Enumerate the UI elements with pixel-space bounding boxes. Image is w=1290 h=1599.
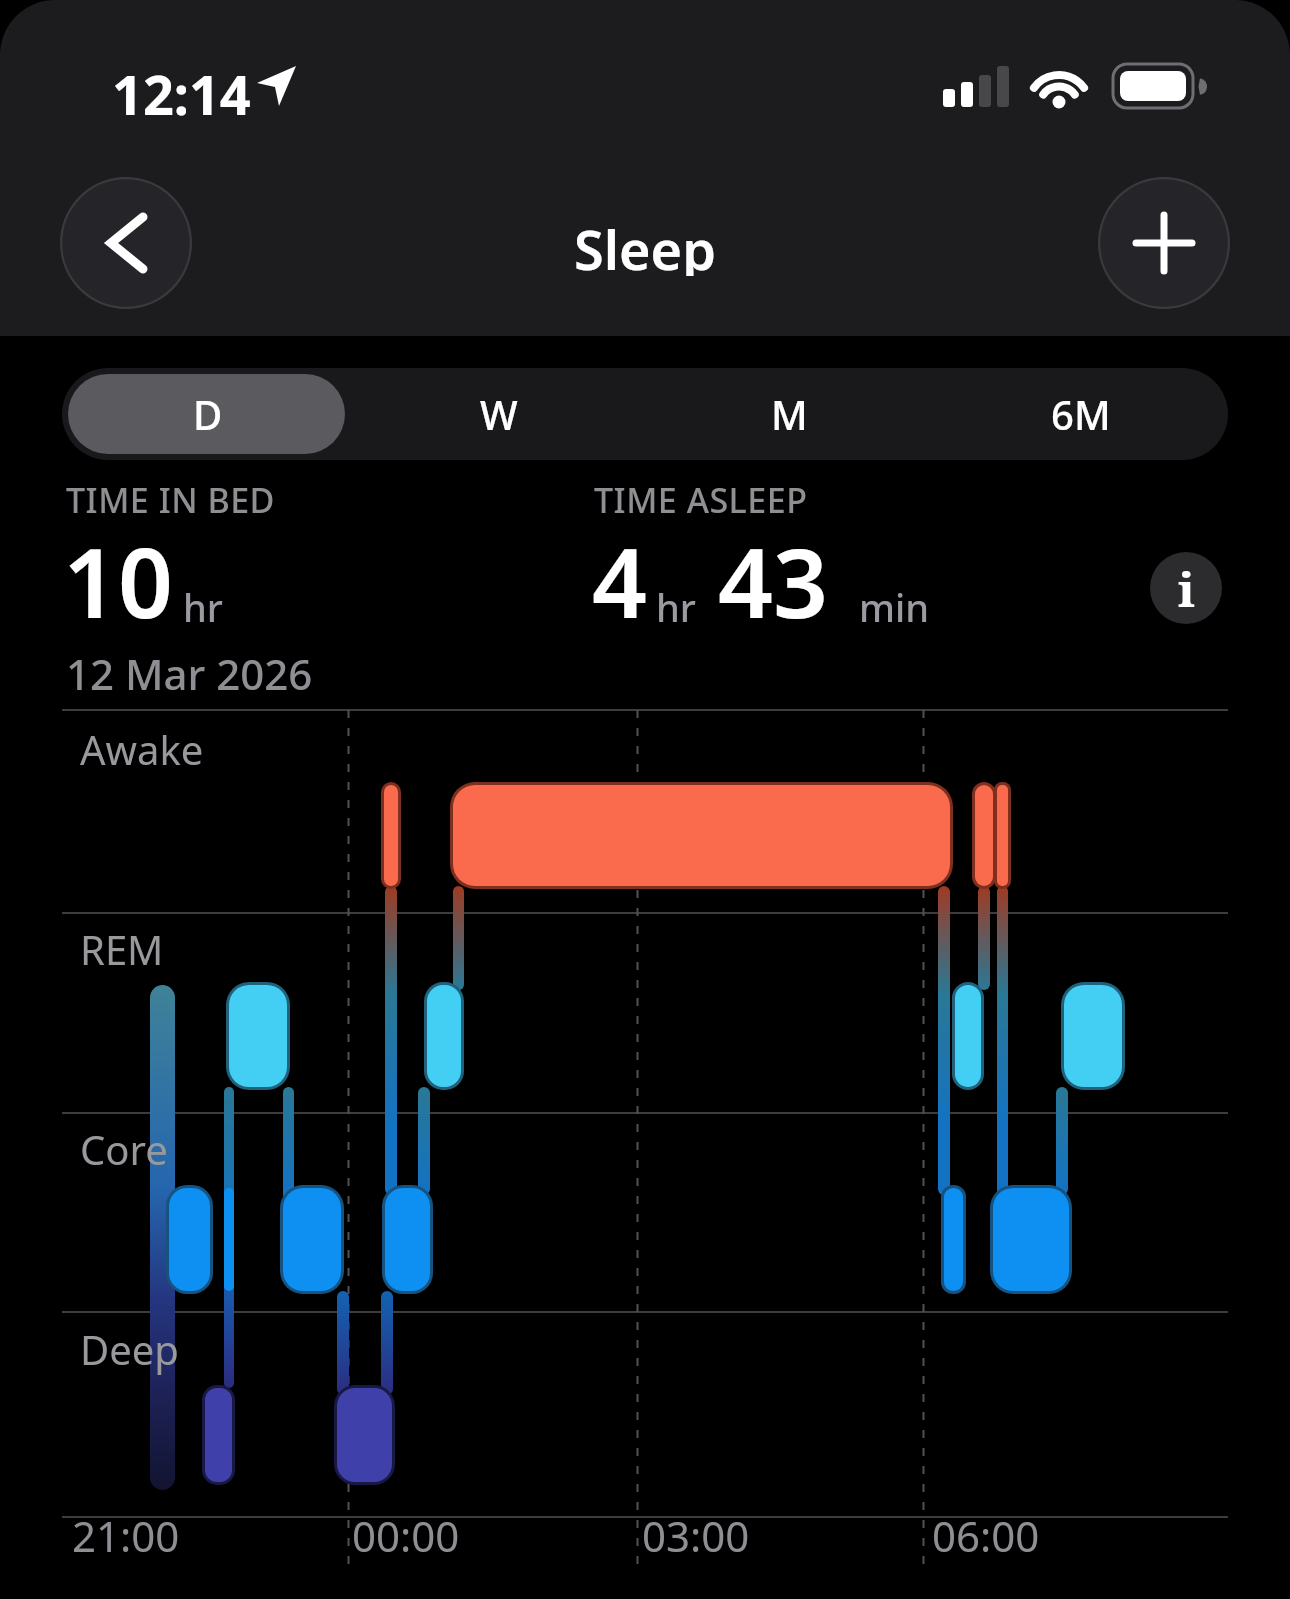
staticText: REM xyxy=(80,922,164,976)
staticText: 43 xyxy=(718,515,828,646)
staticText: W xyxy=(480,387,518,441)
button[interactable] xyxy=(60,177,192,309)
staticText: 12 Mar 2026 xyxy=(66,645,313,702)
staticText: D xyxy=(193,387,223,441)
staticText: 00:00 xyxy=(352,1507,460,1564)
staticText: 10 xyxy=(63,515,173,646)
staticText: 06:00 xyxy=(932,1507,1040,1564)
staticText: Sleep xyxy=(574,212,716,276)
staticText: M xyxy=(771,387,808,441)
button[interactable]: i xyxy=(1150,552,1222,624)
button[interactable]: M xyxy=(644,368,935,460)
staticText: 4 xyxy=(592,515,647,646)
button[interactable]: W xyxy=(353,368,644,460)
staticText: 12:14 xyxy=(112,57,251,131)
button[interactable] xyxy=(1098,177,1230,309)
button[interactable]: 6M xyxy=(935,368,1226,460)
button[interactable]: D xyxy=(62,368,353,460)
staticText: i xyxy=(1178,556,1195,621)
staticText: Core xyxy=(80,1122,168,1176)
staticText: Deep xyxy=(80,1322,179,1376)
staticText: 6M xyxy=(1051,387,1111,441)
staticText: hr xyxy=(183,581,223,633)
staticText: Awake xyxy=(80,722,204,776)
staticText: TIME IN BED xyxy=(66,477,275,523)
staticText: hr xyxy=(656,581,696,633)
staticText: 21:00 xyxy=(72,1507,180,1564)
staticText: TIME ASLEEP xyxy=(594,477,808,523)
staticText: 03:00 xyxy=(642,1507,750,1564)
staticText: min xyxy=(859,581,930,633)
